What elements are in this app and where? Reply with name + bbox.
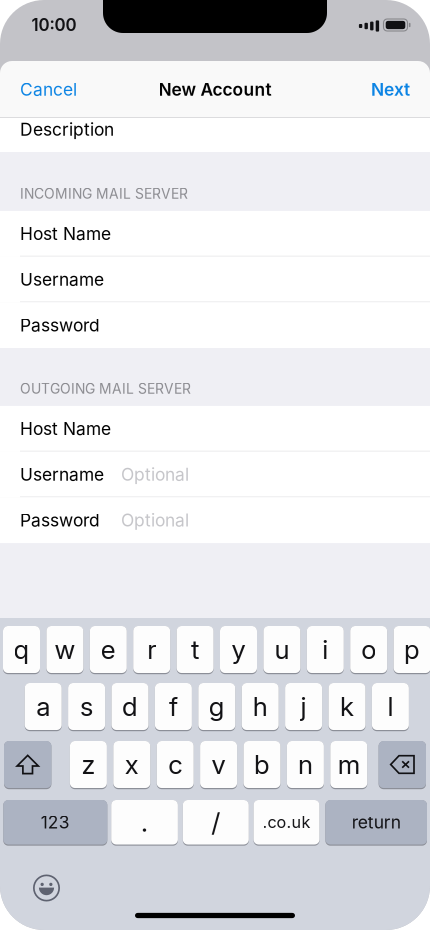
button[interactable]: v bbox=[200, 741, 237, 788]
staticText: v bbox=[212, 749, 226, 780]
button[interactable]: o bbox=[350, 626, 387, 673]
staticText: . bbox=[141, 806, 148, 838]
staticText: l bbox=[387, 691, 393, 722]
button[interactable]: d bbox=[111, 683, 148, 730]
button[interactable]: i bbox=[307, 626, 344, 673]
button[interactable]: Host Name bbox=[0, 406, 430, 452]
button[interactable]: Username bbox=[0, 452, 430, 497]
staticText: q bbox=[13, 634, 29, 665]
staticText: b bbox=[254, 749, 270, 780]
staticText: n bbox=[298, 749, 313, 780]
staticText: Optional bbox=[121, 464, 189, 485]
button[interactable]: Password bbox=[0, 302, 430, 348]
staticText: z bbox=[81, 749, 95, 780]
staticText: / bbox=[211, 806, 220, 838]
button[interactable]: Cancel bbox=[14, 67, 83, 111]
staticText: h bbox=[253, 691, 268, 722]
staticText: f bbox=[169, 691, 178, 722]
button[interactable]: Shift bbox=[4, 741, 51, 788]
button[interactable]: m bbox=[330, 741, 367, 788]
staticText: Host Name bbox=[20, 418, 111, 439]
staticText: d bbox=[122, 691, 138, 722]
button[interactable]: r bbox=[133, 626, 170, 673]
button[interactable]: z bbox=[70, 741, 107, 788]
staticText: i bbox=[322, 634, 328, 665]
button[interactable]: Delete bbox=[379, 741, 426, 788]
button[interactable]: Host Name bbox=[0, 211, 430, 257]
button[interactable]: u bbox=[263, 626, 300, 673]
button[interactable]: return bbox=[325, 800, 427, 844]
staticText: Username bbox=[20, 464, 104, 485]
staticText: 123 bbox=[41, 812, 70, 833]
button[interactable]: / bbox=[183, 800, 249, 844]
button[interactable]: x bbox=[113, 741, 150, 788]
staticText: Password bbox=[20, 510, 100, 531]
button[interactable]: . bbox=[111, 800, 178, 844]
button[interactable]: l bbox=[372, 683, 409, 730]
staticText: Password bbox=[20, 315, 100, 336]
staticText: New Account bbox=[158, 79, 271, 100]
button[interactable]: k bbox=[328, 683, 365, 730]
button[interactable]: a bbox=[25, 683, 62, 730]
staticText: c bbox=[168, 749, 182, 780]
button[interactable]: j bbox=[285, 683, 322, 730]
staticText: m bbox=[338, 749, 360, 780]
staticText: Next bbox=[371, 79, 410, 100]
button[interactable]: t bbox=[177, 626, 214, 673]
staticText: 10:00 bbox=[31, 15, 76, 35]
staticText: a bbox=[36, 691, 50, 722]
staticText: k bbox=[340, 691, 354, 722]
button[interactable]: c bbox=[157, 741, 194, 788]
staticText: Host Name bbox=[20, 223, 111, 244]
button[interactable]: .co.uk bbox=[253, 800, 319, 844]
staticText: Optional bbox=[121, 510, 189, 531]
button[interactable]: h bbox=[242, 683, 279, 730]
button[interactable]: Next bbox=[365, 67, 416, 111]
staticText: Description bbox=[20, 119, 114, 140]
staticText: .co.uk bbox=[262, 812, 310, 832]
staticText: r bbox=[147, 634, 156, 665]
staticText: p bbox=[404, 634, 420, 665]
staticText: OUTGOING MAIL SERVER bbox=[20, 380, 191, 397]
button[interactable]: Emoji bbox=[24, 866, 68, 910]
staticText: Username bbox=[20, 269, 104, 290]
button[interactable]: Password bbox=[0, 497, 430, 543]
button[interactable]: y bbox=[220, 626, 257, 673]
button[interactable]: g bbox=[198, 683, 235, 730]
staticText: s bbox=[80, 691, 93, 722]
staticText: u bbox=[274, 634, 289, 665]
button[interactable]: w bbox=[46, 626, 83, 673]
button[interactable]: Username bbox=[0, 257, 430, 302]
staticText: e bbox=[101, 634, 116, 665]
button[interactable]: b bbox=[243, 741, 280, 788]
staticText: g bbox=[209, 691, 225, 722]
staticText: w bbox=[54, 634, 75, 665]
button[interactable]: q bbox=[3, 626, 40, 673]
staticText: j bbox=[301, 691, 307, 722]
staticText: INCOMING MAIL SERVER bbox=[20, 185, 188, 202]
staticText: return bbox=[352, 812, 401, 833]
staticText: y bbox=[231, 634, 245, 665]
button[interactable]: p bbox=[394, 626, 430, 673]
button[interactable]: f bbox=[155, 683, 192, 730]
button[interactable]: n bbox=[287, 741, 324, 788]
staticText: x bbox=[125, 749, 139, 780]
staticText: o bbox=[361, 634, 376, 665]
button[interactable]: 123 bbox=[3, 800, 107, 844]
button[interactable]: s bbox=[68, 683, 105, 730]
staticText: t bbox=[191, 634, 199, 665]
staticText: Cancel bbox=[20, 79, 77, 100]
button[interactable]: e bbox=[90, 626, 127, 673]
